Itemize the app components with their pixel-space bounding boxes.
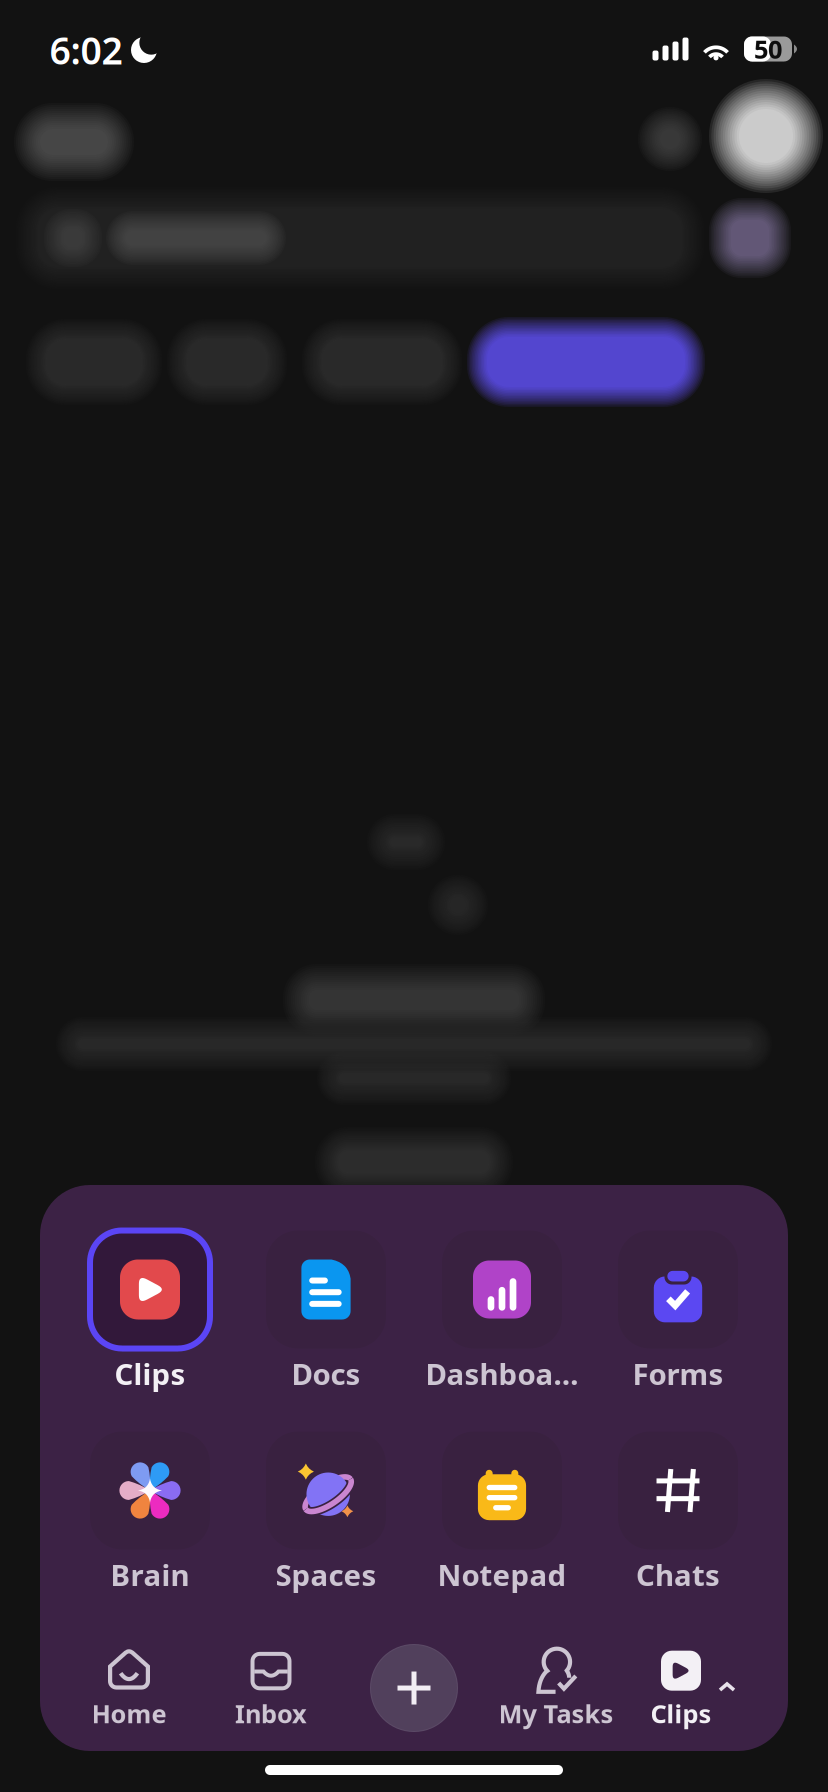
staticText: My Tasks <box>498 1697 613 1730</box>
button[interactable]: Forms <box>590 1225 766 1397</box>
button[interactable]: Chats <box>590 1426 766 1598</box>
staticText: Chats <box>636 1555 720 1594</box>
button[interactable]: Notepad <box>414 1426 590 1598</box>
staticText: Spaces <box>275 1555 376 1594</box>
staticText: Brain <box>110 1555 189 1594</box>
staticText: Docs <box>291 1354 360 1393</box>
button[interactable]: Create <box>354 1628 474 1748</box>
staticText: 6:02 <box>49 25 122 75</box>
button[interactable]: Dashboa… <box>414 1225 590 1397</box>
staticText: 50 <box>754 32 782 66</box>
button[interactable]: Docs <box>238 1225 414 1397</box>
staticText: Forms <box>632 1354 723 1393</box>
staticText: Notepad <box>437 1555 566 1594</box>
button[interactable]: Spaces <box>238 1426 414 1598</box>
button[interactable]: Clips <box>596 1640 766 1740</box>
button[interactable]: Clips <box>62 1225 238 1397</box>
staticText: Home <box>91 1697 166 1730</box>
button[interactable]: My Tasks <box>471 1640 641 1740</box>
button[interactable]: Home <box>44 1640 214 1740</box>
button[interactable]: Inbox <box>186 1640 356 1740</box>
staticText: Dashboa… <box>425 1354 578 1393</box>
button[interactable]: Brain <box>62 1426 238 1598</box>
staticText: Inbox <box>235 1697 307 1730</box>
staticText: Clips <box>650 1697 711 1730</box>
staticText: Clips <box>114 1354 185 1393</box>
